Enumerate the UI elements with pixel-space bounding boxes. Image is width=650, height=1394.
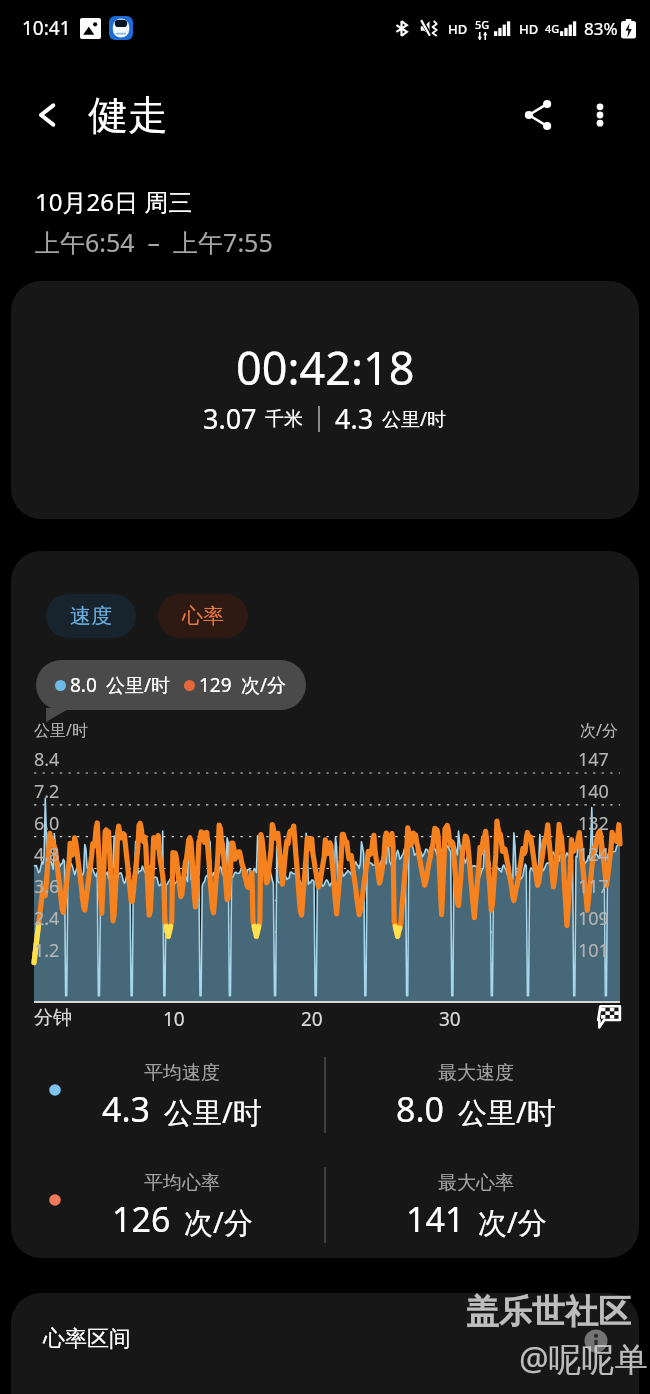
staticText: 公里/时 — [164, 1092, 262, 1132]
staticText: 20 — [301, 1006, 323, 1032]
staticText: 3.6 — [34, 874, 60, 899]
staticText: 124 — [578, 842, 609, 867]
staticText: 公里/时 — [106, 672, 171, 698]
staticText: 心率 — [182, 603, 224, 629]
staticText: 141 — [406, 1196, 465, 1242]
staticText: 公里/时 — [34, 719, 88, 741]
staticText: 8.4 — [34, 747, 60, 772]
button[interactable]: 00:42:18 — [11, 281, 639, 519]
staticText: 8.0 — [70, 672, 97, 698]
staticText: 1.2 — [34, 938, 60, 963]
staticText: 次/分 — [478, 1202, 547, 1242]
staticText: 10 — [163, 1006, 185, 1032]
button[interactable]: More options — [576, 91, 624, 139]
staticText: 101 — [578, 938, 609, 963]
staticText: 平均心率 — [144, 1171, 220, 1195]
staticText: 次/分 — [241, 672, 287, 698]
staticText: 速度 — [70, 603, 112, 629]
staticText: 10月26日 周三 — [35, 185, 193, 218]
staticText: 次/分 — [580, 719, 618, 741]
staticText: 健走 — [88, 90, 168, 140]
staticText: 公里/时 — [382, 406, 447, 432]
staticText: 132 — [578, 811, 609, 836]
staticText: 次/分 — [184, 1202, 253, 1242]
staticText: 126 — [112, 1196, 171, 1242]
staticText: 109 — [578, 906, 609, 931]
staticText: 129 — [199, 672, 232, 698]
staticText: 心率区间 — [43, 1325, 131, 1353]
staticText: 5G — [475, 17, 490, 32]
staticText: 分钟 — [34, 1006, 72, 1030]
button[interactable]: 速度 — [46, 594, 136, 638]
button[interactable]: Share — [514, 91, 562, 139]
staticText: 最大心率 — [438, 1171, 514, 1195]
staticText: 00:42:18 — [236, 337, 415, 398]
button[interactable]: 心率 — [158, 594, 248, 638]
staticText: HD — [519, 20, 539, 38]
staticText: 30 — [439, 1006, 461, 1032]
staticText: 140 — [578, 779, 609, 804]
staticText: @呢呢单 — [519, 1336, 648, 1381]
staticText: 平均速度 — [144, 1061, 220, 1085]
staticText: 最大速度 — [438, 1061, 514, 1085]
staticText: 2.4 — [34, 906, 60, 931]
staticText: 3.07 — [203, 400, 257, 437]
staticText: 4.3 — [335, 400, 374, 437]
button[interactable]: 心率区间 — [11, 1293, 639, 1394]
staticText: 83% — [584, 17, 618, 40]
staticText: 千米 — [265, 407, 303, 431]
button[interactable]: Back — [26, 93, 70, 137]
staticText: 4G — [545, 21, 560, 36]
staticText: 4.3 — [102, 1086, 151, 1132]
staticText: 147 — [578, 747, 609, 772]
staticText: HD — [448, 20, 468, 38]
staticText: 盖乐世社区 — [466, 1291, 631, 1333]
staticText: 4.8 — [34, 842, 60, 867]
staticText: 117 — [578, 874, 609, 899]
staticText: 公里/时 — [458, 1092, 556, 1132]
staticText: 7.2 — [34, 779, 60, 804]
staticText: 6.0 — [34, 811, 60, 836]
staticText: 上午6:54 – 上午7:55 — [35, 225, 273, 259]
staticText: 8.0 — [396, 1086, 445, 1132]
staticText: 10:41 — [22, 15, 71, 41]
